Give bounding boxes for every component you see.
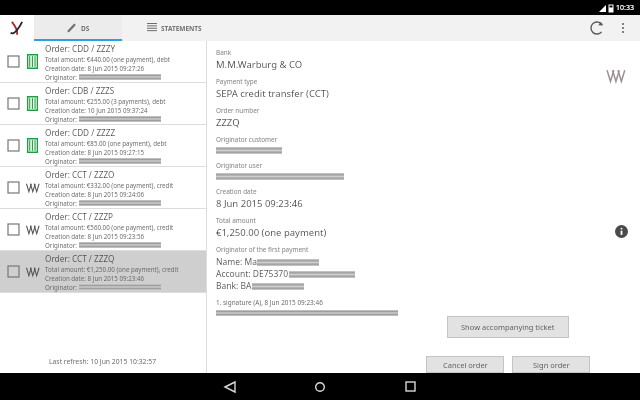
staticText: Originator user xyxy=(216,161,263,170)
staticText: Sign order xyxy=(533,360,570,370)
staticText: SEPA credit transfer (CCT) xyxy=(216,87,329,100)
staticText: Order: CCT / ZZZQ xyxy=(45,253,115,264)
staticText: 8 Jun 2015 09:23:46 xyxy=(216,197,303,210)
button[interactable]: Order: CCT / ZZZO xyxy=(0,167,206,209)
staticText: Show accompanying ticket xyxy=(461,322,555,332)
staticText: Originator customer xyxy=(216,135,278,144)
staticText: Originator: xyxy=(45,73,79,81)
staticText: Bank xyxy=(216,48,232,57)
staticText: Bank: BA xyxy=(216,280,252,292)
staticText: Order: CDB / ZZZS xyxy=(45,85,115,96)
staticText: Name: Ma xyxy=(216,256,257,268)
staticText: Total amount: €1,250.00 (one payment), c… xyxy=(45,265,179,273)
button[interactable]: More options xyxy=(610,15,636,41)
staticText: 10:33 xyxy=(616,3,634,13)
staticText: Originator: xyxy=(45,199,79,207)
staticText: Order: CDD / ZZZZ xyxy=(45,127,116,138)
staticText: Creation date: 8 Jun 2015 09:24:06 xyxy=(45,190,144,198)
staticText: Originator: xyxy=(45,157,79,165)
staticText: M.M.Warburg & CO xyxy=(216,58,303,71)
staticText: Order: CCT / ZZZP xyxy=(45,211,114,222)
button[interactable]: Sign order xyxy=(512,356,590,373)
staticText: Creation date: 8 Jun 2015 09:23:46 xyxy=(45,274,144,282)
staticText: Creation date: 8 Jun 2015 09:27:15 xyxy=(45,148,144,156)
staticText: Cancel order xyxy=(443,360,488,370)
staticText: Last refresh: 10 Jun 2015 10:32:57 xyxy=(49,357,157,366)
button[interactable]: Order: CCT / ZZZP xyxy=(0,209,206,251)
button[interactable]: Show accompanying ticket xyxy=(447,316,569,338)
staticText: Creation date: 8 Jun 2015 09:23:56 xyxy=(45,232,144,240)
staticText: Order: CDD / ZZZY xyxy=(45,43,116,54)
button[interactable]: Cancel order xyxy=(426,356,504,373)
button[interactable]: Refresh xyxy=(584,15,610,41)
staticText: Creation date: 10 Jun 2015 09:37:24 xyxy=(45,106,148,114)
button[interactable]: STATEMENTS xyxy=(122,15,227,41)
staticText: Originator: xyxy=(45,241,79,249)
button[interactable]: Recent apps xyxy=(387,373,433,400)
button[interactable]: Order: CDD / ZZZZ xyxy=(0,125,206,167)
staticText: €1,250.00 (one payment) xyxy=(216,226,327,239)
button[interactable]: Order: CDB / ZZZS xyxy=(0,83,206,125)
staticText: Payment type xyxy=(216,77,258,86)
staticText: Order: CCT / ZZZO xyxy=(45,169,115,180)
button[interactable]: Info xyxy=(612,222,630,240)
staticText: Total amount: €255.00 (3 payments), debt xyxy=(45,97,166,105)
button[interactable]: Back xyxy=(207,373,253,400)
staticText: 1. signature (A), 8 Jun 2015 09:23:46 xyxy=(216,298,323,307)
staticText: Total amount: €332.00 (one payment), cre… xyxy=(45,181,174,189)
staticText: Creation date: 8 Jun 2015 09:27:26 xyxy=(45,64,144,72)
staticText: Total amount xyxy=(216,216,256,225)
staticText: ZZZQ xyxy=(216,116,240,129)
button[interactable]: Order: CDD / ZZZY xyxy=(0,41,206,83)
staticText: STATEMENTS xyxy=(161,24,202,33)
button[interactable]: DS xyxy=(34,15,122,41)
staticText: Total amount: €85.00 (one payment), debt xyxy=(45,139,167,147)
staticText: Creation date xyxy=(216,187,257,196)
staticText: Total amount: €560.00 (one payment), cre… xyxy=(45,223,174,231)
staticText: Originator: xyxy=(45,115,79,123)
staticText: Account: DE75370 xyxy=(216,268,289,280)
staticText: Order number xyxy=(216,106,260,115)
staticText: DS xyxy=(81,24,90,33)
staticText: Total amount: €440.00 (one payment), deb… xyxy=(45,55,171,63)
staticText: Originator of the first payment xyxy=(216,245,309,254)
staticText: Originator: xyxy=(45,283,79,291)
button[interactable]: Home xyxy=(297,373,343,400)
button[interactable]: Order: CCT / ZZZQ xyxy=(0,251,206,293)
button[interactable]: App logo xyxy=(0,15,34,41)
